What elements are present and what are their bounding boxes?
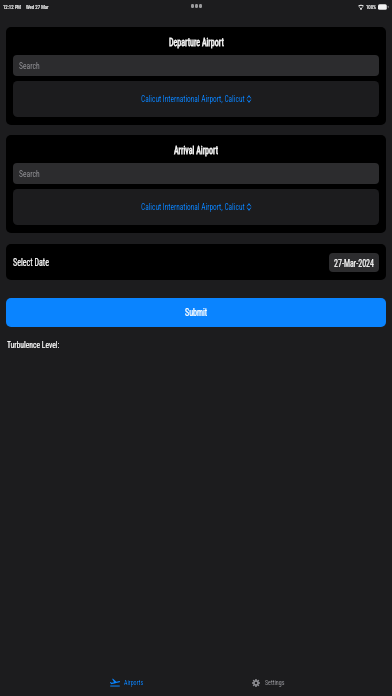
button[interactable]: Calicut International Airport, Calicut bbox=[13, 189, 379, 225]
staticText: Airports bbox=[124, 678, 143, 687]
staticText: 12:12 PM bbox=[3, 3, 21, 10]
button[interactable]: Search airport bbox=[13, 163, 379, 184]
staticText: Search bbox=[19, 60, 40, 71]
staticText: Calicut International Airport, Calicut bbox=[141, 201, 245, 212]
staticText: Departure Airport bbox=[169, 37, 224, 49]
staticText: Turbulence Level: bbox=[7, 339, 60, 350]
button[interactable]: Submit bbox=[6, 298, 386, 327]
staticText: Settings bbox=[265, 678, 285, 687]
staticText: Select Date bbox=[13, 257, 49, 269]
button[interactable]: Search airport bbox=[13, 55, 379, 76]
staticText: Wed 27 Mar bbox=[26, 3, 49, 10]
button[interactable]: Settings bbox=[248, 674, 289, 691]
staticText: 100% bbox=[366, 3, 376, 10]
staticText: 27-Mar-2024 bbox=[334, 258, 374, 270]
staticText: Calicut International Airport, Calicut bbox=[141, 93, 245, 104]
button[interactable]: Select Date bbox=[6, 244, 386, 280]
button[interactable]: Calicut International Airport, Calicut bbox=[13, 81, 379, 117]
button[interactable]: Airports bbox=[105, 673, 147, 692]
staticText: Submit bbox=[185, 307, 207, 319]
staticText: Search bbox=[19, 168, 40, 179]
staticText: Arrival Airport bbox=[174, 145, 219, 157]
